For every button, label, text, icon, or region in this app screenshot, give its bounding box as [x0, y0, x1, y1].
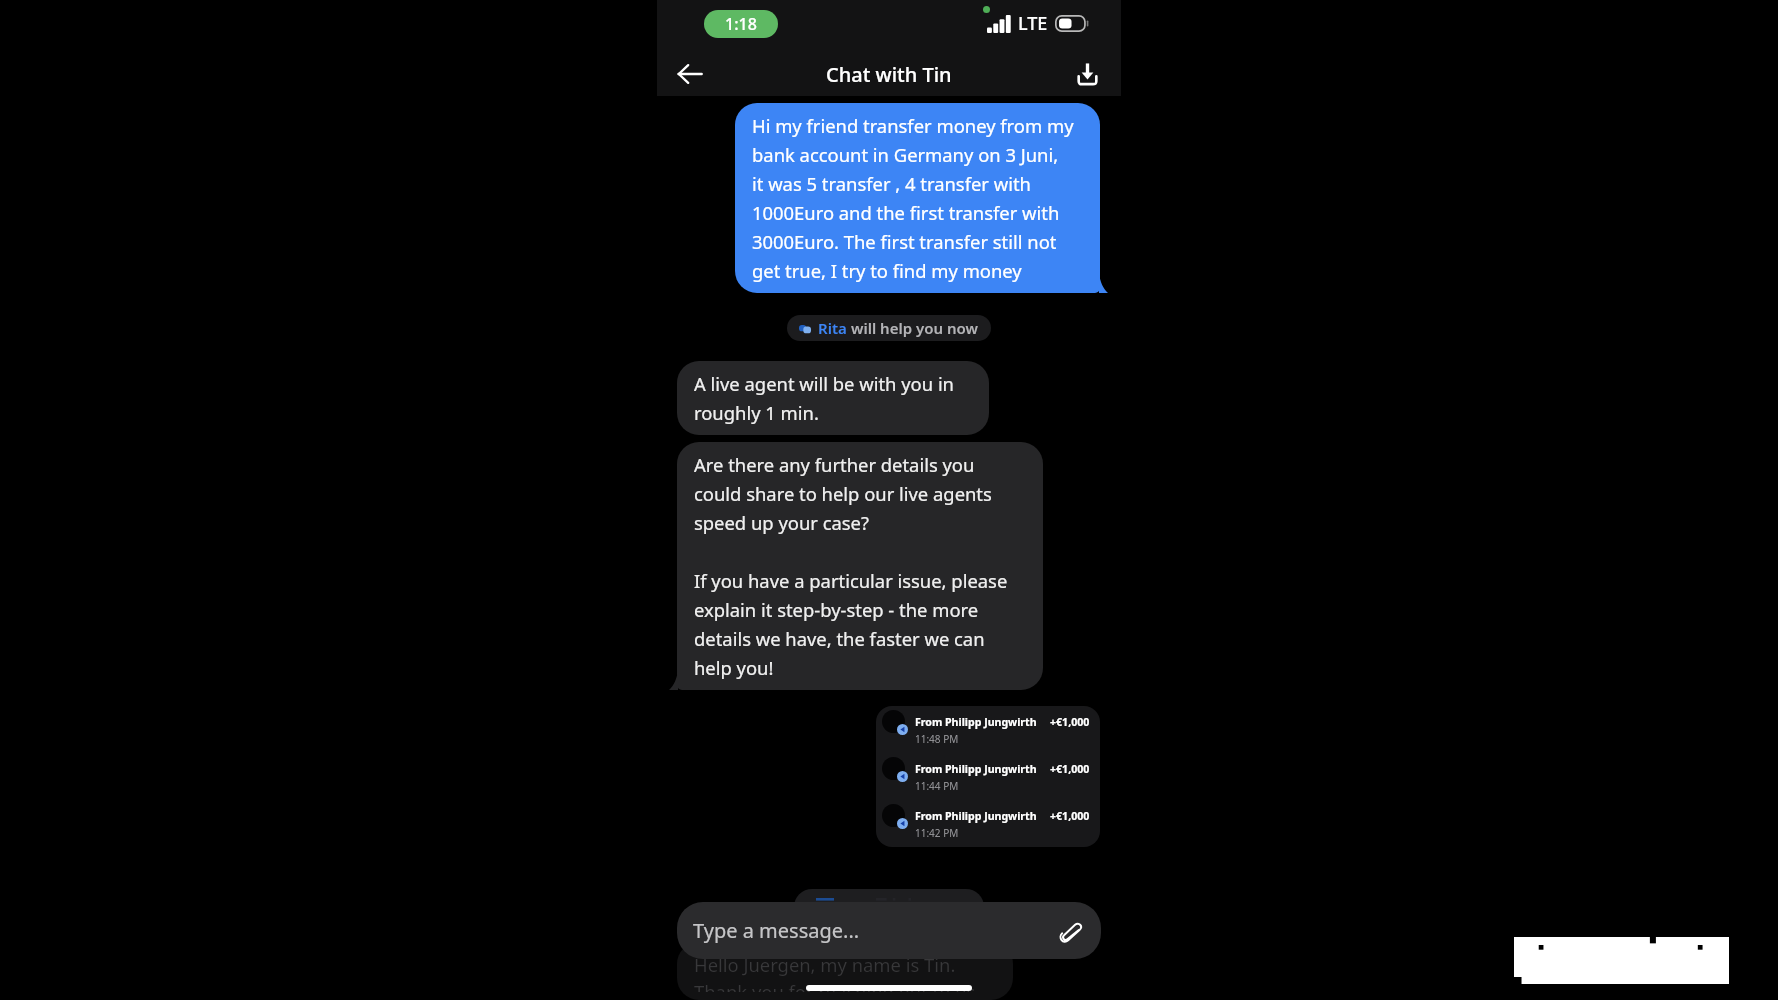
button[interactable]: Hello Juergen, my name is Tin. — [677, 942, 1013, 1000]
staticText: LTE — [1018, 11, 1048, 36]
button[interactable]: Type a message... — [677, 902, 1101, 959]
staticText: 3000Euro. The first transfer still not — [752, 229, 1086, 254]
button[interactable]: Back — [667, 51, 713, 97]
button[interactable]: Download — [1064, 51, 1110, 97]
button[interactable]: Hi my friend transfer money from my — [735, 103, 1100, 293]
staticText: Hello Juergen, my name is Tin. — [694, 952, 999, 977]
staticText: Hi my friend transfer money from my — [752, 113, 1086, 138]
staticText: Type a message... — [693, 917, 1054, 944]
button[interactable] — [794, 889, 984, 929]
button[interactable]: Are there any further details you — [677, 442, 1043, 690]
staticText: will help you now — [851, 318, 978, 338]
staticText: From Philipp Jungwirth — [915, 762, 1037, 776]
staticText: explain it step-by-step - the more — [694, 597, 1029, 622]
button[interactable]: Attach file — [1054, 915, 1086, 947]
staticText: Rita — [818, 318, 847, 338]
staticText: Are there any further details you — [694, 452, 1029, 477]
staticText: get true, I try to find my money — [752, 258, 1086, 283]
staticText: 1000Euro and the first transfer with — [752, 200, 1086, 225]
staticText: help you! — [694, 655, 1029, 680]
staticText: A live agent will be with you in — [694, 371, 975, 396]
staticText: From Philipp Jungwirth — [915, 809, 1037, 823]
button[interactable]: Rita — [787, 315, 991, 341]
staticText: Thank you for reaching out to us — [694, 979, 999, 992]
staticText: 11:42 PM — [915, 826, 959, 840]
staticText: 11:44 PM — [915, 779, 959, 793]
staticText: speed up your case? — [694, 510, 1029, 535]
staticText: From Philipp Jungwirth — [915, 715, 1037, 729]
staticText: +€1,000 — [1050, 762, 1090, 776]
staticText: could share to help our live agents — [694, 481, 1029, 506]
staticText: it was 5 transfer , 4 transfer with — [752, 171, 1086, 196]
staticText: roughly 1 min. — [694, 400, 975, 425]
staticText: +€1,000 — [1050, 715, 1090, 729]
staticText: +€1,000 — [1050, 809, 1090, 823]
staticText: 11:48 PM — [915, 732, 959, 746]
button[interactable]: A live agent will be with you in — [677, 361, 989, 435]
staticText: If you have a particular issue, please — [694, 568, 1029, 593]
staticText: 1:18 — [725, 13, 757, 35]
staticText: details we have, the faster we can — [694, 626, 1029, 651]
button[interactable]: From Philipp Jungwirth — [876, 706, 1100, 847]
staticText: bank account in Germany on 3 Juni, — [752, 142, 1086, 167]
staticText: Chat with Tin — [826, 61, 952, 88]
